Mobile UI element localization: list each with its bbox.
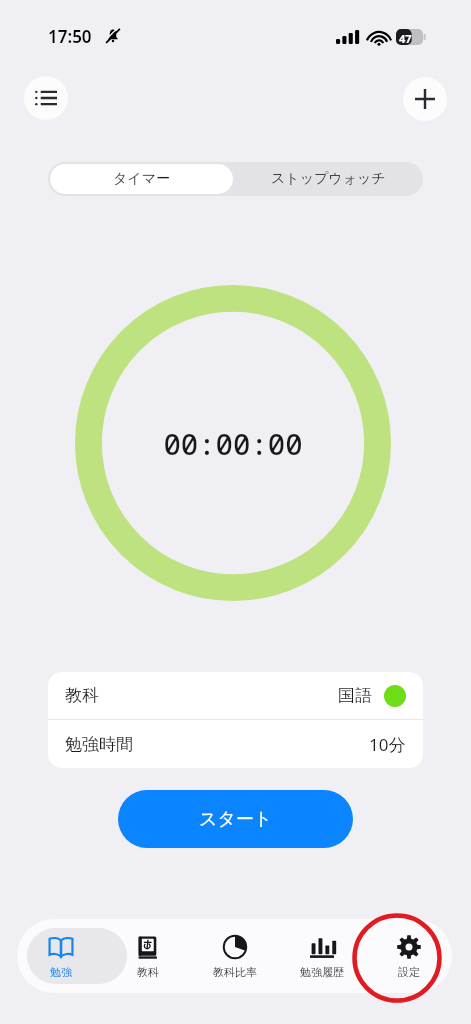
button[interactable]: 設定 <box>365 919 452 993</box>
button[interactable]: Add <box>403 77 447 121</box>
staticText: 勉強 <box>50 965 72 979</box>
button[interactable]: 教科 <box>104 919 191 993</box>
button[interactable]: 勉強時間 <box>48 720 423 768</box>
staticText: タイマー <box>113 170 170 188</box>
staticText: 勉強履歴 <box>300 965 344 979</box>
button[interactable]: スタート <box>118 790 353 848</box>
staticText: 17:50 <box>48 25 92 48</box>
staticText: 10分 <box>369 733 406 756</box>
button[interactable]: List <box>24 76 68 120</box>
button[interactable]: 教科 <box>48 672 423 719</box>
staticText: ストップウォッチ <box>271 170 386 188</box>
button[interactable]: 教科比率 <box>191 919 278 993</box>
staticText: スタート <box>199 808 273 831</box>
staticText: 教科比率 <box>213 965 257 979</box>
staticText: 47 <box>399 31 412 46</box>
staticText: 国語 <box>338 685 372 706</box>
button[interactable]: 勉強 <box>17 919 104 993</box>
button[interactable]: タイマー <box>50 164 233 194</box>
button[interactable]: ストップウォッチ <box>235 164 421 194</box>
staticText: 教科 <box>137 965 159 979</box>
button[interactable]: 勉強履歴 <box>278 919 365 993</box>
staticText: 設定 <box>398 965 420 979</box>
staticText: 教科 <box>65 685 99 706</box>
staticText: 勉強時間 <box>65 734 133 755</box>
staticText: 00:00:00 <box>163 424 303 463</box>
